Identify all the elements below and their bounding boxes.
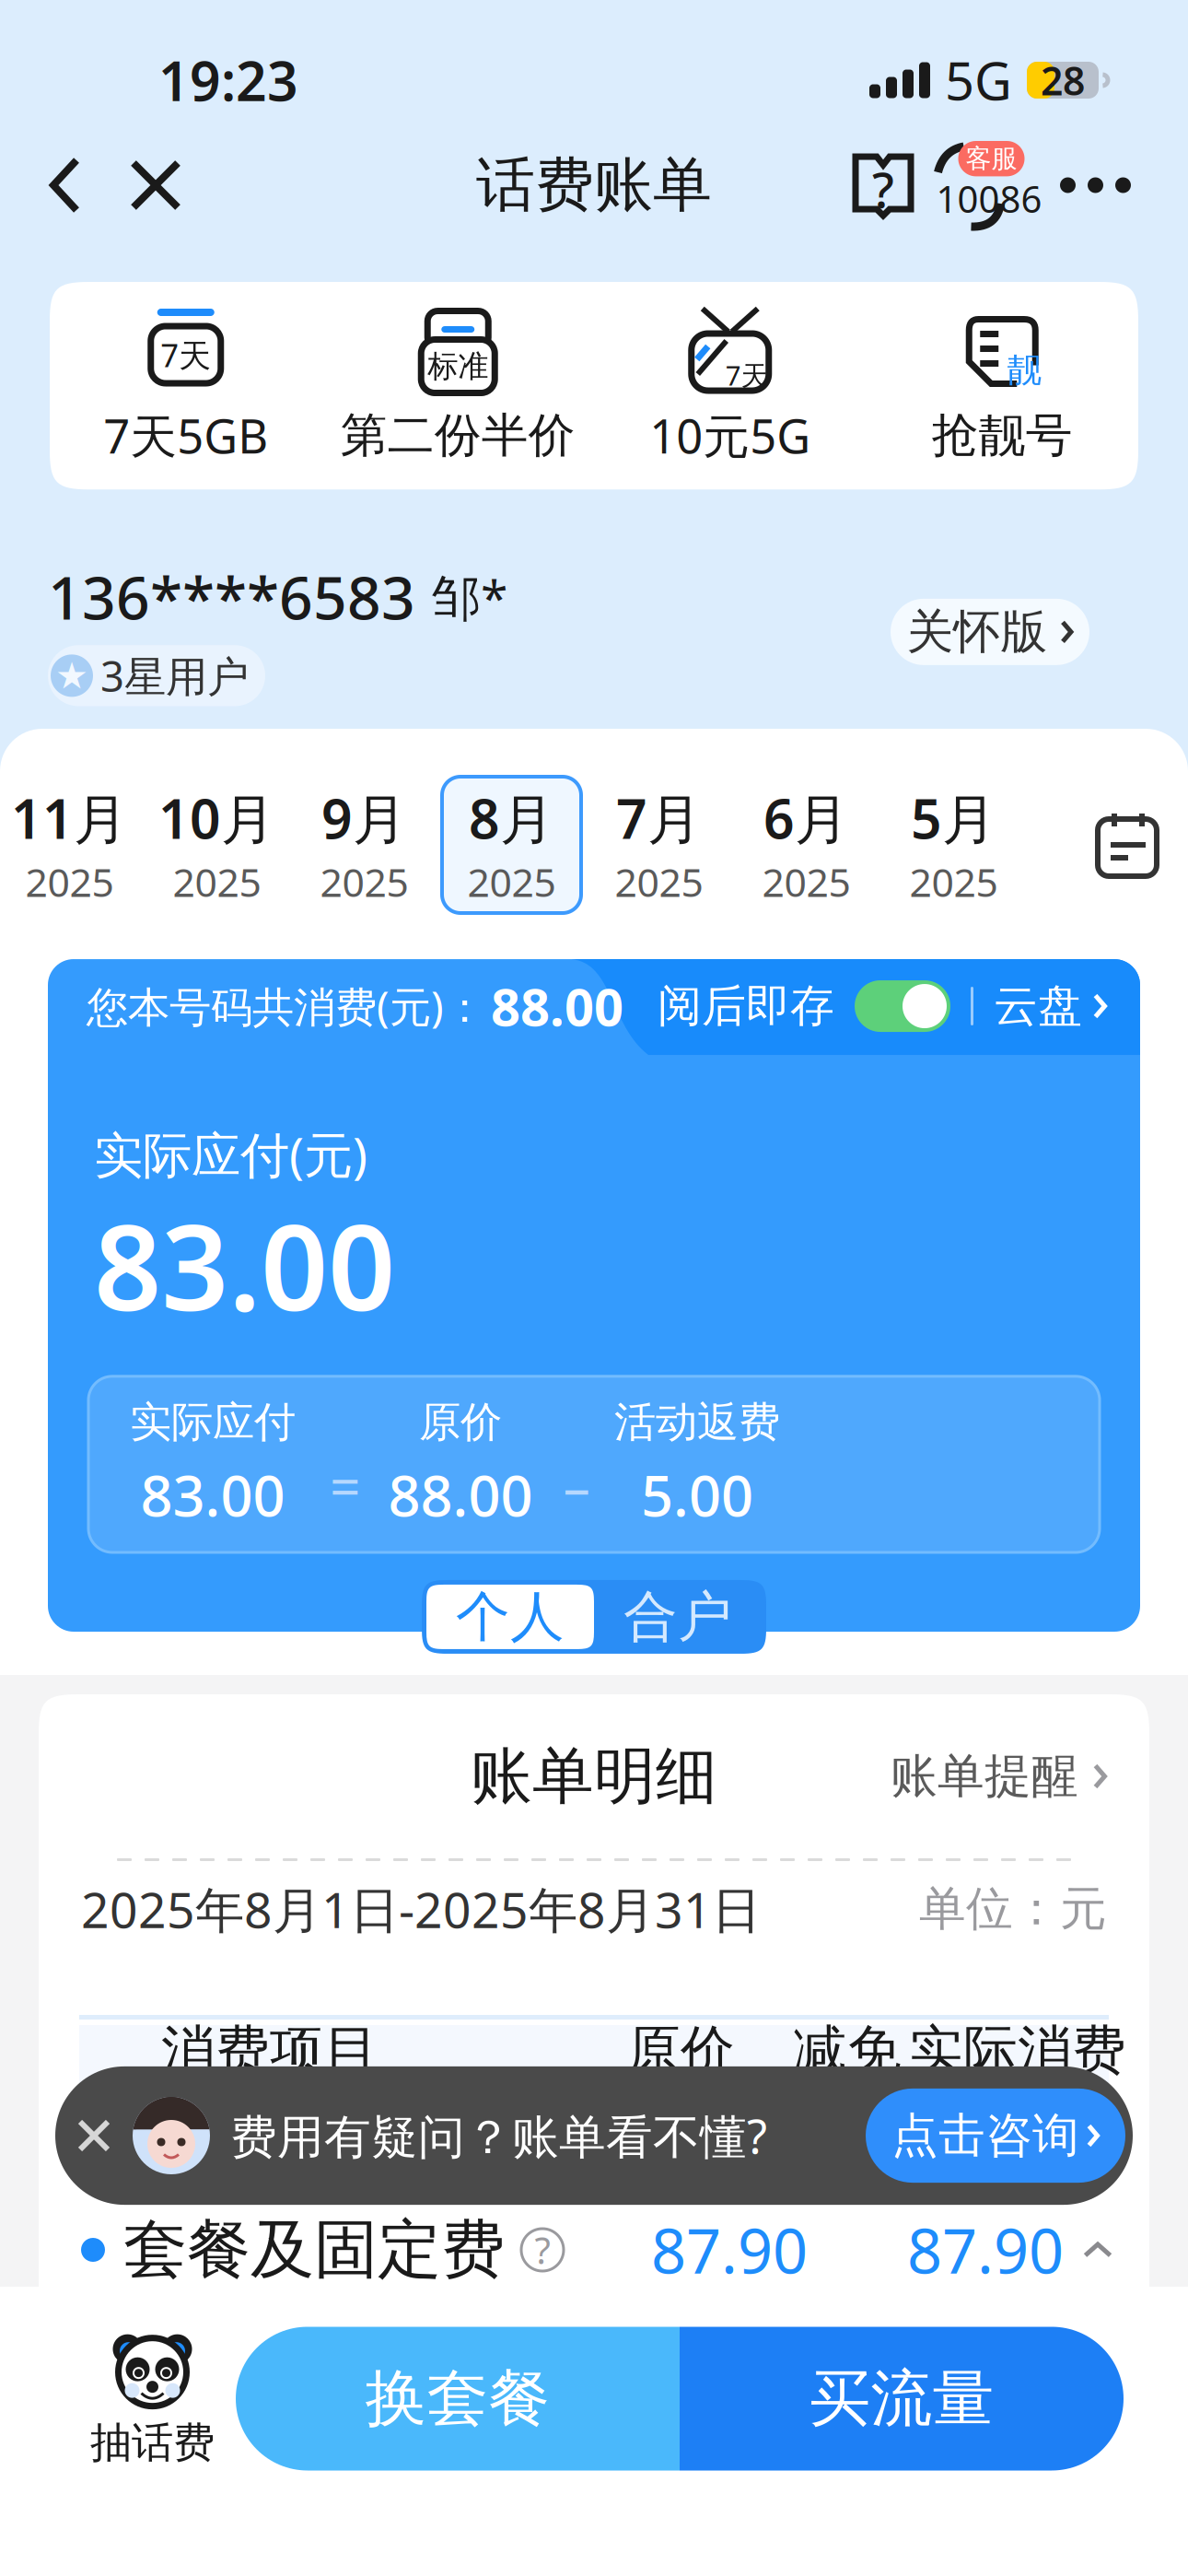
staticText: 88.00	[388, 1457, 533, 1532]
button[interactable]: 账单提醒	[891, 1748, 1107, 1805]
staticText: 实际消费	[909, 2018, 1126, 2084]
staticText: 账单明细	[471, 1739, 717, 1814]
staticText: 11月	[11, 782, 128, 854]
staticText: 客服	[966, 143, 1017, 174]
button[interactable]: 换套餐	[236, 2327, 680, 2471]
staticText: 10元5G	[649, 404, 811, 466]
button[interactable]: 9月	[295, 777, 434, 913]
staticText: 7天	[726, 357, 768, 393]
staticText: 83.00	[140, 1457, 285, 1532]
button[interactable]: 靓	[866, 302, 1138, 470]
staticText: 2025	[909, 856, 998, 908]
button[interactable]: 云盘	[994, 979, 1131, 1033]
staticText: 7天	[160, 334, 211, 376]
staticText: 88.00	[491, 972, 623, 1040]
staticText: 136****6583	[48, 558, 415, 636]
staticText: 抢靓号	[932, 407, 1073, 464]
staticText: 19:23	[158, 44, 298, 116]
staticText: 10月	[158, 782, 275, 854]
staticText: 抽话费	[90, 2417, 215, 2469]
staticText: ★	[55, 655, 88, 697]
staticText: 2025	[615, 856, 703, 908]
staticText: 换套餐	[365, 2361, 550, 2436]
staticText: 2025年8月1日-2025年8月31日	[81, 1876, 761, 1942]
staticText: 费用有疑问？账单看不懂?	[230, 2105, 767, 2167]
staticText: 第二份半价	[341, 407, 575, 464]
staticText: 7月	[616, 782, 702, 854]
staticText: 2025	[762, 856, 850, 908]
staticText: 5G	[945, 46, 1012, 114]
staticText: 账单提醒	[891, 1748, 1078, 1805]
staticText: 标准	[427, 347, 488, 385]
staticText: 阅后即存	[658, 979, 834, 1033]
staticText: ?	[535, 2225, 550, 2274]
button[interactable]: 5月	[884, 777, 1023, 913]
button[interactable]: 抽话费	[0, 2329, 215, 2469]
button[interactable]: 关怀版	[891, 599, 1089, 665]
staticText: 话费账单	[476, 149, 712, 221]
staticText: 87.90	[651, 2209, 808, 2291]
staticText: 83.00	[94, 1187, 395, 1343]
staticText: 28	[1041, 54, 1085, 106]
staticText: 云盘	[994, 979, 1082, 1033]
button[interactable]: 个人	[426, 1585, 594, 1649]
button[interactable]: 11月	[0, 777, 139, 913]
staticText: 2025	[25, 856, 114, 908]
staticText: 消费项目	[161, 2018, 379, 2084]
staticText: 5月	[911, 782, 996, 854]
button[interactable]: 阅后即存	[626, 979, 950, 1033]
button[interactable]: 合户	[594, 1585, 762, 1649]
button[interactable]: Dismiss	[55, 2119, 133, 2152]
staticText: 原价	[626, 2018, 735, 2084]
button[interactable]: 7天	[50, 299, 322, 472]
staticText: 您本号码共消费(元)：	[87, 978, 485, 1034]
staticText: 减免	[793, 2018, 902, 2084]
staticText: 实际应付	[130, 1397, 296, 1448]
staticText: 活动返费	[614, 1397, 780, 1448]
staticText: 10086	[936, 174, 1042, 223]
staticText: –	[563, 1450, 590, 1521]
button[interactable]: 8月	[442, 777, 581, 913]
staticText: 点击咨询	[891, 2107, 1079, 2164]
staticText: 8月	[469, 782, 554, 854]
staticText: 原价	[419, 1397, 502, 1448]
staticText: 6月	[763, 782, 849, 854]
staticText: 87.90	[907, 2209, 1064, 2291]
staticText: 2025	[173, 856, 261, 908]
button[interactable]: More	[1032, 155, 1131, 215]
staticText: 套餐及固定费	[123, 2211, 505, 2289]
button[interactable]: Pick month	[1098, 812, 1188, 878]
staticText: 关怀版	[907, 603, 1048, 661]
button[interactable]: 6月	[737, 777, 876, 913]
staticText: =	[330, 1450, 361, 1521]
button[interactable]: Back	[31, 140, 99, 230]
staticText: ?	[872, 156, 894, 221]
button[interactable]: 买流量	[680, 2327, 1124, 2471]
button[interactable]: Customer service 10086	[914, 141, 1032, 229]
staticText: 9月	[321, 782, 407, 854]
staticText: 合户	[623, 1584, 732, 1650]
button[interactable]: 10月	[147, 777, 286, 913]
staticText: 个人	[456, 1584, 565, 1650]
staticText: 买流量	[809, 2361, 994, 2436]
button[interactable]: Help	[852, 145, 914, 226]
button[interactable]: 标准	[322, 302, 594, 470]
button[interactable]: 7天	[594, 299, 866, 472]
staticText: 单位：元	[919, 1880, 1107, 1938]
staticText: 2025	[320, 856, 408, 908]
staticText: 靓	[1007, 349, 1041, 391]
staticText: 5.00	[641, 1457, 753, 1532]
staticText: 7天5GB	[103, 404, 268, 466]
staticText: 邹*	[432, 564, 507, 629]
staticText: 实际应付(元)	[94, 1121, 367, 1186]
button[interactable]: 7月	[589, 777, 728, 913]
staticText: 3星用户	[100, 648, 249, 703]
staticText: 2025	[467, 856, 556, 908]
button[interactable]: Close	[99, 143, 200, 228]
button[interactable]: 点击咨询	[866, 2089, 1125, 2183]
